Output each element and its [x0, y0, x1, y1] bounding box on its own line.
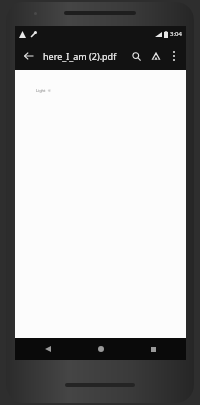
button[interactable]: Back: [28, 338, 68, 360]
button[interactable]: Search: [127, 47, 145, 65]
button[interactable]: Recent apps: [133, 338, 173, 360]
button[interactable]: Home: [81, 338, 121, 360]
button[interactable]: More options: [166, 48, 182, 64]
staticText: 3:04: [170, 30, 182, 38]
staticText: Light ☼: [36, 88, 52, 93]
button[interactable]: Back: [19, 46, 39, 66]
staticText: here_I_am (2).pdf: [43, 50, 127, 62]
button[interactable]: Save to Drive: [147, 47, 165, 65]
